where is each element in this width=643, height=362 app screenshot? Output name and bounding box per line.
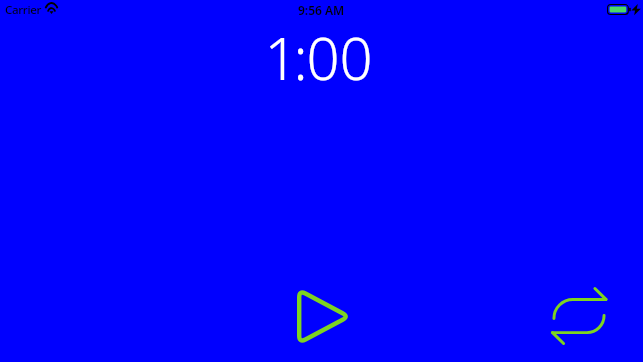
button[interactable]: Set timer duration [252, 22, 390, 86]
button[interactable]: Repeat timer [539, 276, 619, 357]
staticText: 9:56 AM [298, 2, 345, 18]
staticText: 1 [264, 18, 298, 82]
staticText: Carrier [5, 2, 42, 18]
staticText: : [293, 18, 308, 82]
staticText: 00 [306, 18, 373, 82]
button[interactable]: Start timer [287, 278, 361, 355]
